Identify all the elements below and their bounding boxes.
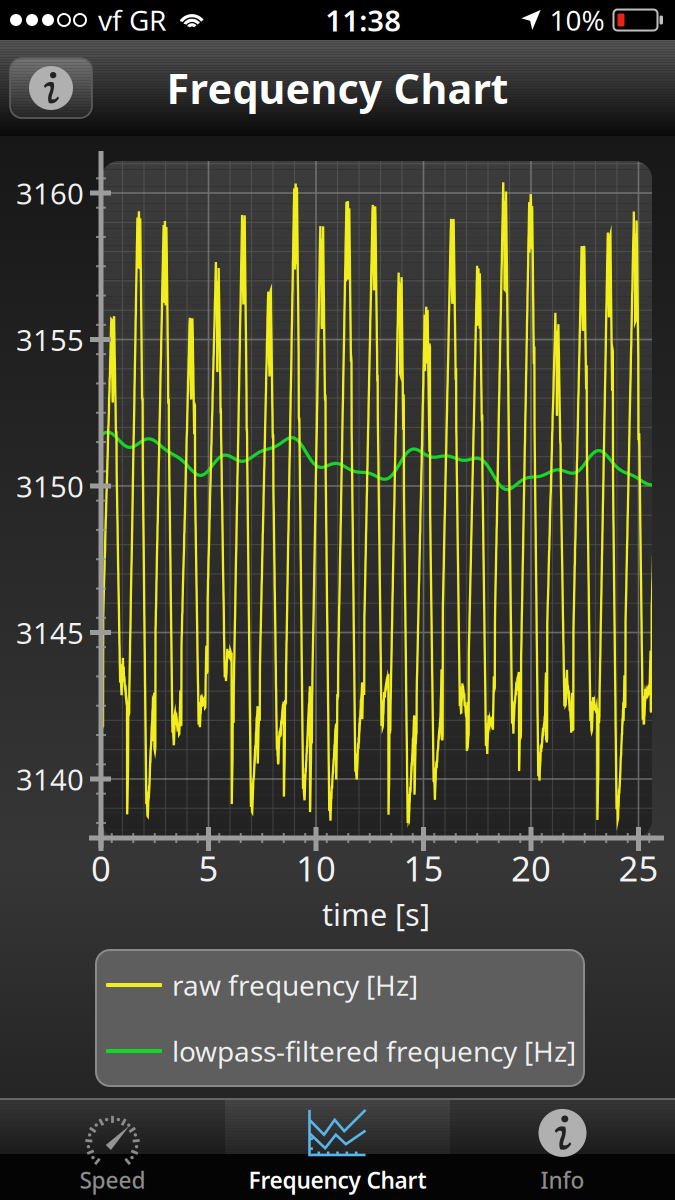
staticText: 10 xyxy=(296,845,336,891)
staticText: lowpass-filtered frequency [Hz] xyxy=(172,1032,576,1070)
staticText: 10% xyxy=(549,1,604,39)
staticText: 3145 xyxy=(16,613,84,652)
staticText: Info xyxy=(540,1165,584,1195)
staticText: raw frequency [Hz] xyxy=(172,966,418,1004)
staticText: 0 xyxy=(91,845,111,891)
button[interactable]: Frequency Chart xyxy=(225,1098,450,1200)
staticText: 25 xyxy=(618,845,658,891)
staticText: 5 xyxy=(198,845,218,891)
staticText: time [s] xyxy=(322,894,430,934)
staticText: 11:38 xyxy=(325,0,401,39)
staticText: vf GR xyxy=(98,1,166,39)
button[interactable]: Speed xyxy=(0,1098,225,1200)
staticText: 3150 xyxy=(16,466,84,505)
button[interactable]: Info xyxy=(450,1098,675,1200)
staticText: 3160 xyxy=(16,173,84,212)
staticText: 20 xyxy=(511,845,551,891)
button[interactable]: Info xyxy=(10,58,92,118)
staticText: Frequency Chart xyxy=(166,61,508,115)
staticText: Speed xyxy=(79,1165,145,1195)
staticText: 15 xyxy=(403,845,443,891)
staticText: Frequency Chart xyxy=(248,1165,426,1195)
staticText: 3140 xyxy=(16,759,84,798)
staticText: 3155 xyxy=(16,320,84,359)
